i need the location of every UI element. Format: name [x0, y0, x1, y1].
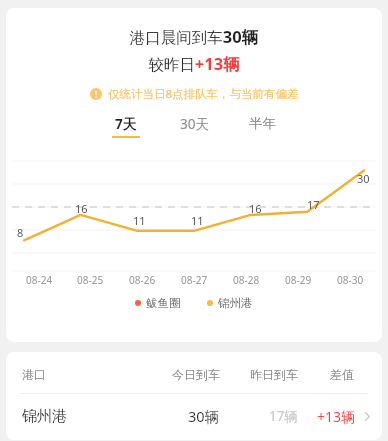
staticText: 11	[191, 213, 204, 228]
staticText: 08-30	[337, 273, 364, 287]
staticText: 半年	[249, 115, 276, 132]
staticText: 港口晨间到车30辆	[6, 25, 382, 48]
button[interactable]: 锦州港	[6, 394, 382, 438]
staticText: 08-25	[77, 273, 104, 287]
staticText: 港口	[22, 367, 46, 382]
staticText: 17	[307, 197, 320, 212]
staticText: 17辆	[269, 407, 298, 425]
staticText: 锦州港	[22, 407, 67, 426]
staticText: 30天	[180, 115, 209, 133]
staticText: 08-29	[285, 273, 312, 287]
button[interactable]: 锦州港	[207, 296, 253, 310]
staticText: 7天	[115, 115, 137, 133]
staticText: 30辆	[188, 406, 220, 426]
staticText: 锦州港	[218, 296, 253, 310]
staticText: 鲅鱼圈	[146, 296, 181, 310]
button[interactable]: 鲅鱼圈	[135, 296, 181, 310]
staticText: 8	[17, 225, 24, 240]
staticText: 昨日到车	[250, 367, 298, 382]
staticText: 30	[357, 171, 370, 186]
staticText: 16	[249, 201, 262, 216]
other: 查看详情	[361, 410, 374, 423]
staticText: 08-24	[26, 273, 53, 287]
button[interactable]: 半年	[247, 115, 278, 135]
staticText: +13辆	[317, 407, 356, 426]
staticText: 16	[75, 201, 88, 216]
staticText: 差值	[330, 367, 354, 382]
staticText: 08-28	[233, 273, 260, 287]
staticText: 08-27	[181, 273, 208, 287]
button[interactable]: 30天	[178, 115, 211, 136]
staticText: 较昨日+13辆	[6, 52, 382, 75]
button[interactable]: 7天	[110, 115, 142, 138]
staticText: 今日到车	[172, 367, 220, 382]
staticText: 仅统计当日8点排队车，与当前有偏差	[108, 86, 299, 102]
staticText: 11	[133, 213, 146, 228]
staticText: 08-26	[129, 273, 156, 287]
